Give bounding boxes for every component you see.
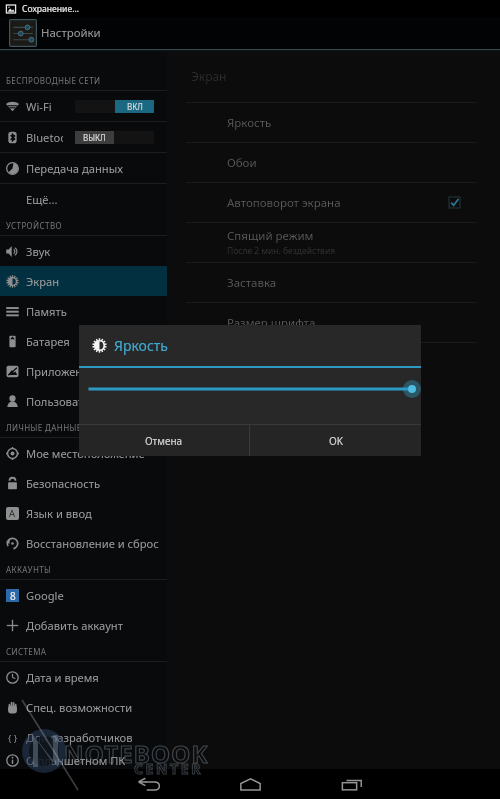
button[interactable]: Память (0, 296, 167, 326)
staticText: A (9, 507, 16, 520)
button[interactable]: Заставка (167, 263, 500, 302)
staticText: ЛИЧНЫЕ ДАННЫЕ (6, 422, 82, 433)
staticText: Пользователи (26, 394, 103, 409)
button[interactable]: Восстановление и сброс (0, 528, 167, 558)
staticText: О планшетном ПК (26, 753, 126, 768)
button[interactable]: Приложения (0, 356, 167, 386)
staticText: Для разработчиков (26, 730, 133, 745)
button[interactable]: Wi-Fi (0, 91, 167, 121)
staticText: Экран (26, 274, 60, 289)
staticText: После 2 мин. бездействия (227, 245, 336, 257)
button[interactable]: Настройки (9, 19, 37, 47)
button[interactable]: Отмена (79, 425, 249, 456)
staticText: Язык и ввод (26, 506, 92, 521)
staticText: ВЫКЛ (83, 132, 106, 143)
button[interactable]: Обои (167, 143, 500, 182)
staticText: OK (329, 434, 343, 448)
button[interactable]: Back (130, 769, 168, 799)
button[interactable]: A (0, 498, 167, 528)
button[interactable]: Мое местоположение (0, 438, 167, 468)
staticText: Дата и время (26, 670, 99, 685)
staticText: Настройки (41, 25, 101, 41)
button[interactable]: Передача данных (0, 153, 167, 183)
staticText: Размер шрифта (227, 315, 316, 331)
staticText: СИСТЕМА (6, 646, 47, 657)
staticText: Мое местоположение (26, 446, 145, 461)
button[interactable]: Яркость (167, 103, 500, 142)
staticText: Спец. возможности (26, 700, 133, 715)
button[interactable]: Ещё... (0, 184, 167, 214)
staticText: БЕСПРОВОДНЫЕ СЕТИ (6, 75, 101, 86)
button[interactable]: Автоповорот экрана (167, 183, 500, 222)
staticText: 8 (10, 589, 16, 602)
staticText: { } (8, 732, 18, 744)
staticText: NOTEBOOK (64, 737, 209, 770)
staticText: Память (26, 304, 67, 319)
button[interactable]: О планшетном ПК (0, 752, 167, 769)
staticText: Приложения (26, 364, 96, 379)
staticText: Заставка (227, 275, 277, 291)
staticText: Обои (227, 155, 257, 171)
staticText: УСТРОЙСТВО (6, 220, 63, 231)
staticText: Сохранение... (22, 3, 80, 15)
button[interactable]: Спящий режим (167, 223, 500, 262)
staticText: Восстановление и сброс (26, 536, 159, 551)
staticText: Отмена (145, 434, 183, 448)
staticText: Яркость (114, 336, 168, 355)
button[interactable]: { } (0, 722, 167, 752)
staticText: Экран (191, 68, 227, 84)
staticText: CENTER (134, 759, 203, 778)
staticText: ВКЛ (127, 101, 143, 112)
button[interactable]: Безопасность (0, 468, 167, 498)
staticText: Автоповорот экрана (227, 195, 341, 211)
staticText: Добавить аккаунт (26, 618, 123, 633)
button[interactable]: Пользователи (0, 386, 167, 416)
staticText: Яркость (227, 115, 272, 131)
button[interactable]: Спец. возможности (0, 692, 167, 722)
staticText: Google (26, 588, 64, 603)
staticText: Wi-Fi (26, 99, 52, 114)
button[interactable]: 8 (0, 580, 167, 610)
button[interactable]: Bluetooth (0, 122, 167, 152)
staticText: Батарея (26, 334, 70, 349)
button[interactable]: Размер шрифта (167, 303, 500, 342)
staticText: Звук (26, 244, 51, 259)
button[interactable]: Звук (0, 236, 167, 266)
staticText: Спящий режим (227, 228, 314, 244)
staticText: Bluetooth (26, 130, 63, 145)
button[interactable]: Батарея (0, 326, 167, 356)
button[interactable]: Экран (0, 266, 167, 296)
staticText: Ещё... (26, 192, 58, 207)
button[interactable]: OK (250, 425, 421, 456)
staticText: Передача данных (26, 161, 123, 176)
button[interactable]: Home (231, 769, 269, 799)
button[interactable]: Recents (333, 769, 371, 799)
staticText: АККАУНТЫ (6, 564, 52, 575)
button[interactable]: Дата и время (0, 662, 167, 692)
staticText: Безопасность (26, 476, 100, 491)
button[interactable]: Добавить аккаунт (0, 610, 167, 640)
